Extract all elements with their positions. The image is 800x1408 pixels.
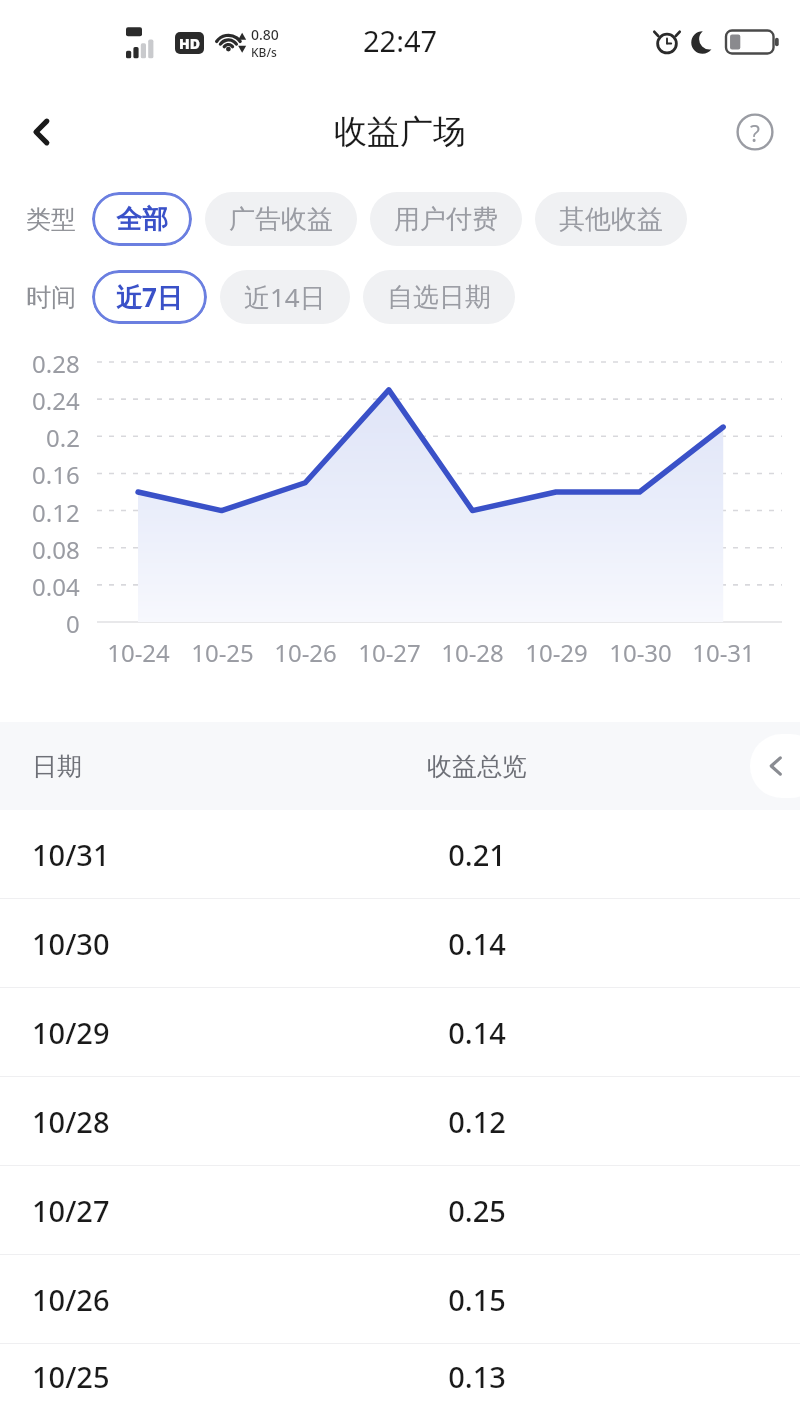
staticText: 0.21 <box>448 835 506 874</box>
staticText: 10/27 <box>32 1191 110 1230</box>
staticText: 0.16 <box>32 458 80 491</box>
button[interactable]: 自选日期 <box>363 270 515 324</box>
staticText: 10/29 <box>32 1013 110 1052</box>
staticText: 10/26 <box>32 1280 110 1319</box>
staticText: 类型 <box>26 204 76 235</box>
staticText: 自选日期 <box>387 281 491 314</box>
button[interactable]: 10/29 <box>0 988 800 1076</box>
staticText: 10/28 <box>32 1102 110 1141</box>
staticText: 0.04 <box>32 570 80 603</box>
staticText: 0.12 <box>448 1102 506 1141</box>
staticText: 近7日 <box>116 279 183 315</box>
staticText: 全部 <box>116 203 168 236</box>
staticText: 0.25 <box>448 1191 506 1230</box>
button[interactable]: 10/30 <box>0 899 800 987</box>
staticText: 0.08 <box>32 533 80 566</box>
staticText: 0.24 <box>32 384 80 417</box>
staticText: 广告收益 <box>229 203 333 236</box>
button[interactable]: 其他收益 <box>535 192 687 246</box>
button[interactable]: 广告收益 <box>205 192 357 246</box>
staticText: 0.12 <box>32 496 80 529</box>
staticText: 收益广场 <box>334 111 466 153</box>
staticText: 0.15 <box>448 1280 506 1319</box>
staticText: KB/s <box>251 44 277 60</box>
staticText: 0.2 <box>46 421 80 454</box>
staticText: 10-25 <box>191 636 254 669</box>
button[interactable]: 近14日 <box>220 270 350 324</box>
button[interactable]: 10/26 <box>0 1255 800 1343</box>
staticText: 0.13 <box>448 1357 506 1396</box>
staticText: ? <box>750 117 760 148</box>
button[interactable]: 10/31 <box>0 810 800 898</box>
staticText: HD <box>179 34 200 53</box>
button[interactable]: Help <box>724 101 786 163</box>
staticText: 0.80 <box>251 25 279 44</box>
staticText: 0.14 <box>448 924 506 963</box>
staticText: 10-28 <box>441 636 504 669</box>
button[interactable]: 近7日 <box>92 270 207 324</box>
staticText: 10-29 <box>525 636 588 669</box>
staticText: 10/31 <box>32 835 110 874</box>
button[interactable]: 全部 <box>92 192 192 246</box>
staticText: 10-27 <box>358 636 421 669</box>
staticText: 0.28 <box>32 347 80 380</box>
staticText: 0.14 <box>448 1013 506 1052</box>
staticText: 收益总览 <box>427 751 527 782</box>
staticText: 10/25 <box>32 1357 110 1396</box>
staticText: 10/30 <box>32 924 110 963</box>
button[interactable]: 用户付费 <box>370 192 522 246</box>
button[interactable]: Back <box>10 100 74 164</box>
staticText: 近14日 <box>244 279 326 315</box>
staticText: 22:47 <box>363 21 438 60</box>
button[interactable]: 10/25 <box>0 1344 800 1408</box>
button[interactable]: 10/27 <box>0 1166 800 1254</box>
staticText: 10-24 <box>107 636 170 669</box>
staticText: 日期 <box>32 751 82 782</box>
button[interactable]: 10/28 <box>0 1077 800 1165</box>
staticText: 10-31 <box>692 636 755 669</box>
staticText: 用户付费 <box>394 203 498 236</box>
button[interactable]: Scroll table left <box>750 734 800 798</box>
staticText: 0 <box>66 607 80 640</box>
staticText: 10-26 <box>274 636 337 669</box>
staticText: 时间 <box>26 282 76 313</box>
staticText: 10-30 <box>609 636 672 669</box>
staticText: 其他收益 <box>559 203 663 236</box>
